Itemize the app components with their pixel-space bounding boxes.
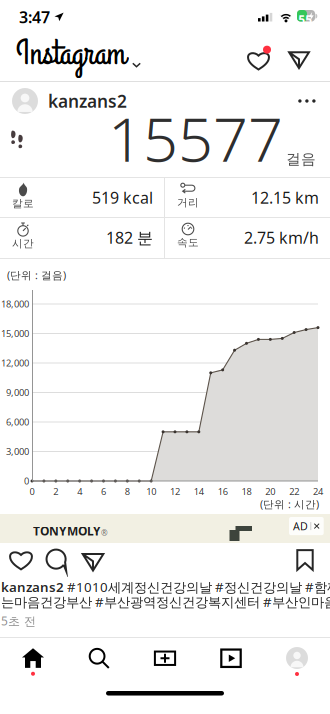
staticText: 속도	[177, 236, 199, 249]
button[interactable]: Reels	[198, 647, 264, 676]
button[interactable]: Comment	[43, 548, 71, 573]
button[interactable]: Create	[132, 647, 198, 676]
staticText: 6	[101, 485, 106, 498]
staticText: ®	[101, 528, 108, 538]
staticText: 칼로	[12, 197, 34, 210]
staticText: 거리	[177, 196, 199, 209]
staticText: kanzans2 #1010세계정신건강의날 #정신건강의날 #함께걷	[1, 578, 330, 596]
staticText: 12	[170, 485, 180, 498]
staticText: 걸음	[286, 150, 316, 168]
staticText: 55	[298, 12, 312, 27]
staticText: (단위 : 시간)	[260, 497, 319, 511]
staticText: 5초 전	[1, 613, 36, 629]
button[interactable]: kanzans2	[0, 82, 127, 120]
button[interactable]: Notifications	[244, 44, 274, 73]
button[interactable]: Profile	[264, 647, 330, 676]
staticText: 22	[289, 485, 299, 498]
staticText: 2.75 km/h	[244, 227, 319, 248]
staticText: (단위 : 걸음)	[7, 268, 66, 282]
staticText: TONYMOLY	[33, 523, 101, 539]
staticText: 0	[24, 475, 29, 487]
staticText: 18,000	[1, 298, 29, 310]
button[interactable]: Like	[6, 548, 36, 573]
staticText: 2	[53, 485, 58, 498]
staticText: 8	[125, 485, 130, 498]
staticText: 10	[146, 485, 156, 498]
staticText: 16	[218, 485, 228, 498]
staticText: 12.15 km	[251, 187, 319, 208]
staticText: 4	[77, 485, 82, 498]
button[interactable]: Direct messages	[285, 47, 313, 71]
staticText: 182 분	[106, 227, 153, 248]
staticText: 15577	[108, 97, 283, 179]
staticText: 3,000	[6, 445, 29, 458]
staticText: Instagram	[16, 30, 126, 78]
staticText: 12,000	[1, 357, 29, 369]
staticText: 는마음건강부산 #부산광역정신건강복지센터 #부산인마음	[1, 593, 330, 611]
button[interactable]: Share	[79, 549, 107, 573]
button[interactable]: More options	[294, 91, 320, 111]
staticText: AD	[293, 519, 308, 533]
button[interactable]: Search	[66, 647, 132, 676]
staticText: 0	[29, 485, 34, 498]
staticText: kanzans2	[48, 89, 127, 112]
staticText: 14	[194, 485, 204, 498]
staticText: 15,000	[1, 327, 29, 340]
staticText: 6,000	[6, 416, 29, 428]
staticText: 시간	[12, 237, 34, 250]
staticText: 24	[313, 485, 323, 498]
button[interactable]: Home	[0, 647, 66, 676]
button[interactable]: Save	[294, 548, 316, 572]
staticText: 18	[241, 485, 251, 498]
button[interactable]: Instagram	[16, 39, 141, 69]
staticText: 9,000	[6, 386, 29, 399]
button[interactable]: TONYMOLY	[0, 514, 330, 543]
staticText: 3:47	[19, 6, 50, 28]
staticText: 519 kcal	[92, 187, 153, 208]
staticText: 20	[265, 485, 275, 498]
